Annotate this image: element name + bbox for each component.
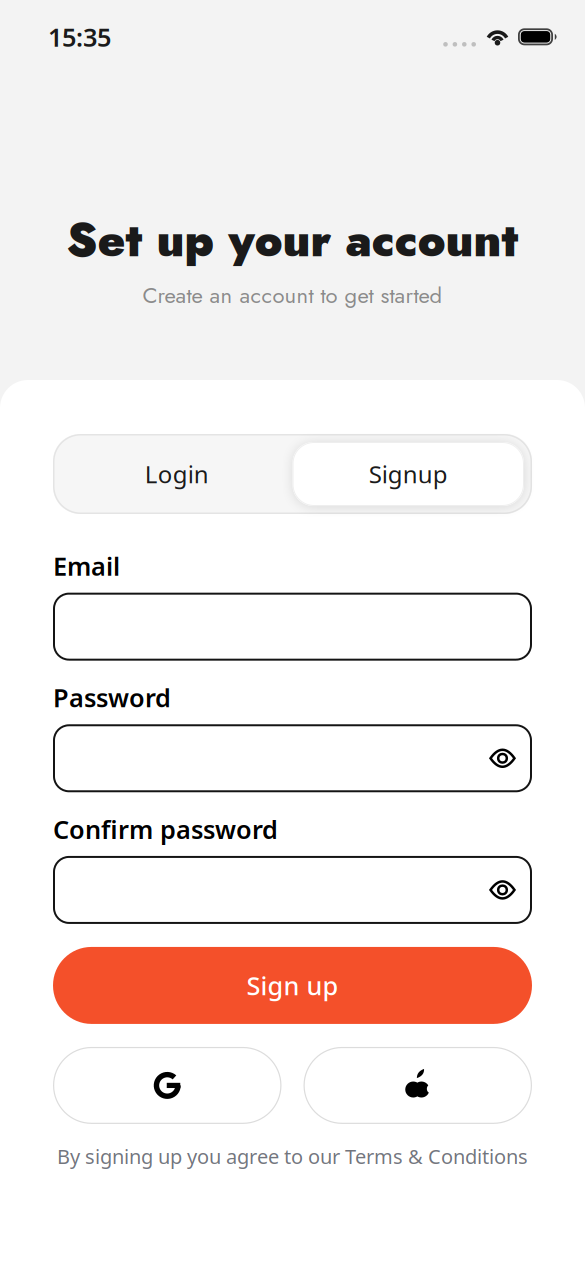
staticText: Password [53, 681, 171, 714]
staticText: Email [53, 549, 120, 583]
button[interactable]: Signup [292, 442, 524, 506]
button[interactable]: Sign up [53, 947, 532, 1024]
button[interactable]: Continue with Apple [303, 1047, 532, 1124]
staticText: By signing up you agree to our [57, 1143, 340, 1169]
staticText: Sign up [246, 969, 338, 1002]
button[interactable]: Continue with Google [53, 1047, 281, 1124]
staticText: Signup [369, 458, 448, 490]
staticText: Terms & Conditions [345, 1143, 528, 1169]
staticText: Create an account to get started [142, 279, 442, 311]
button[interactable]: Show password [489, 880, 532, 900]
staticText: Login [145, 458, 209, 490]
button[interactable]: Login [61, 442, 292, 506]
staticText: Confirm password [53, 812, 278, 846]
button[interactable]: Show password [489, 748, 532, 768]
staticText: 15:35 [48, 20, 111, 54]
staticText: Set up your account [66, 207, 518, 273]
button[interactable]: Terms & Conditions [345, 1143, 528, 1169]
